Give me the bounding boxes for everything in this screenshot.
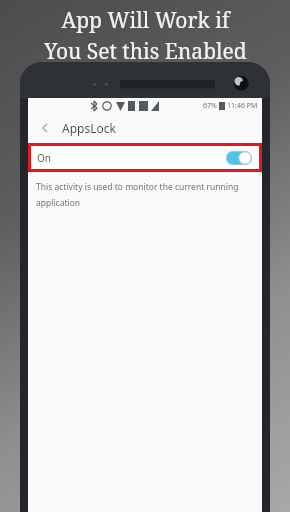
staticText: App Will Work if	[61, 6, 230, 35]
button[interactable]: Toggle AppsLock	[226, 151, 252, 165]
staticText: On	[37, 151, 51, 165]
staticText: 11:46 PM	[227, 101, 258, 111]
staticText: AppsLock	[62, 120, 116, 136]
staticText: You Set this Enabled	[44, 37, 247, 66]
staticText: This activity is used to monitor the cur…	[36, 181, 239, 193]
staticText: application	[36, 197, 81, 209]
button[interactable]: Back	[34, 117, 56, 139]
button[interactable]: On	[31, 146, 259, 169]
staticText: 67%	[203, 101, 217, 111]
